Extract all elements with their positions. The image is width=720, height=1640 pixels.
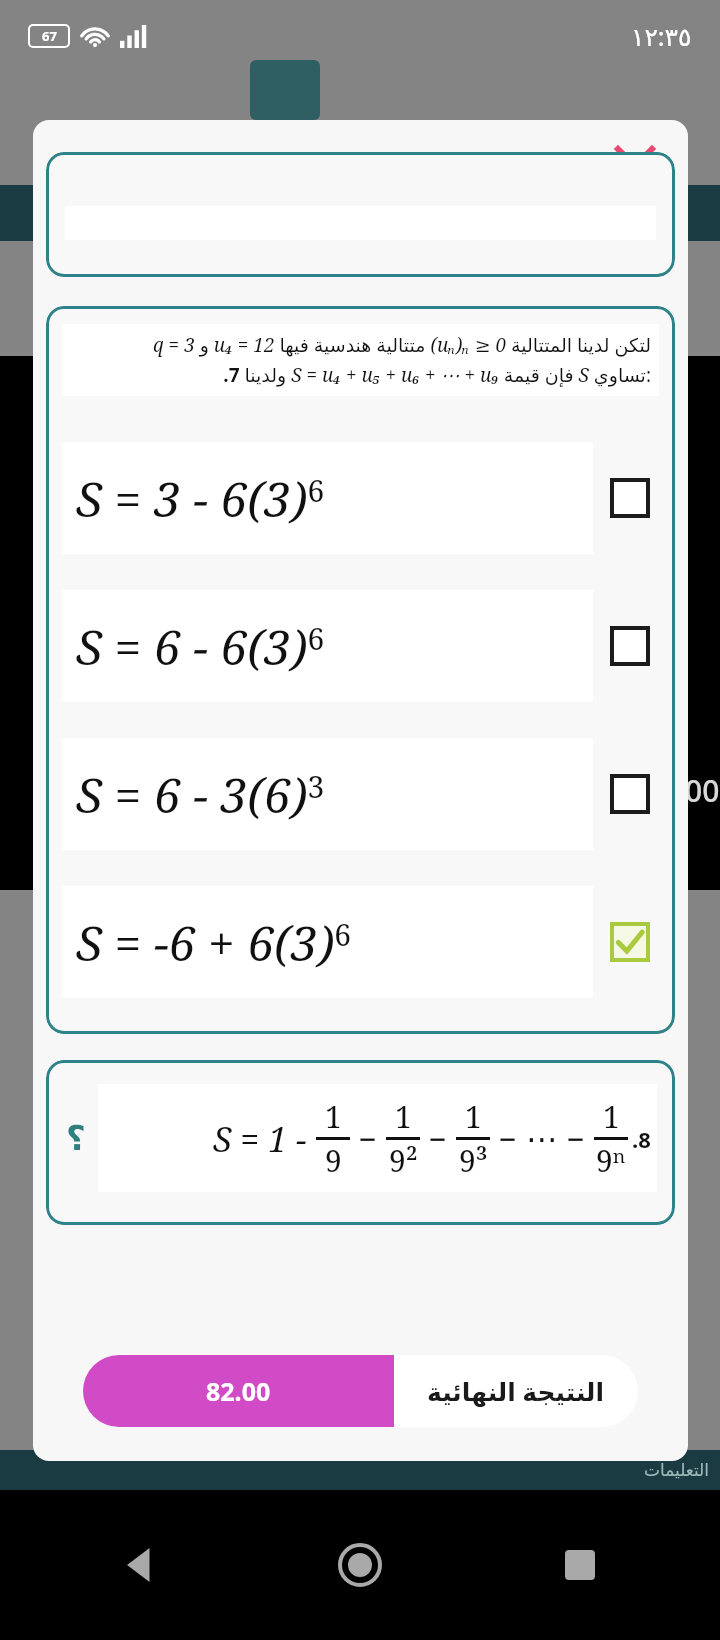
staticText: 9ⁿ [596, 1140, 626, 1181]
staticText: 00 [685, 770, 720, 811]
staticText: 9 [325, 1140, 342, 1181]
staticText: 1 [465, 1096, 482, 1137]
button[interactable]: S = 3 − 6(3)6 [62, 442, 659, 554]
staticText: 1 [395, 1096, 412, 1137]
button[interactable]: Back [110, 1535, 170, 1595]
button[interactable]: 82.00 [83, 1355, 638, 1427]
staticText: 1 [325, 1096, 342, 1137]
staticText: التعليمات [644, 1460, 710, 1480]
staticText: 82.00 [206, 1374, 271, 1408]
staticText: الاختبار [319, 149, 402, 183]
staticText: ١٢:٣٥ [631, 19, 692, 53]
staticText: S = 1 − [213, 1116, 316, 1162]
staticText: 1 [603, 1096, 620, 1137]
staticText: − [350, 1117, 386, 1161]
staticText: S = −6 + 6(3)6 [76, 910, 352, 975]
staticText: 9³ [459, 1140, 488, 1181]
button[interactable]: S = 6 − 6(3)6 [62, 590, 659, 702]
staticText: .8 [632, 1124, 651, 1154]
button[interactable]: Recents [550, 1535, 610, 1595]
staticText: − [420, 1117, 456, 1161]
staticText: 67 [42, 27, 57, 45]
button[interactable] [46, 152, 675, 277]
button[interactable]: ؟ [46, 1060, 675, 1225]
staticText: S = 6 − 3(6)3 [76, 762, 325, 827]
button[interactable]: S = −6 + 6(3)6 [62, 886, 659, 998]
button[interactable]: Home [330, 1535, 390, 1595]
button[interactable]: S = 6 − 3(6)3 [62, 738, 659, 850]
staticText: − [490, 1117, 526, 1161]
staticText: q = 3 و u₄ = 12 متتالية هندسية فيها (uₙ)… [70, 332, 651, 358]
button[interactable]: Close [607, 138, 663, 194]
staticText: ؟ [66, 1118, 86, 1158]
staticText: النتيجة النهائية [427, 1374, 605, 1408]
staticText: S = 6 − 6(3)6 [76, 614, 325, 679]
staticText: .7 ولدينا S = u₄ + u₅ + u₆ + ⋯ + u₉ فإن … [70, 362, 651, 388]
staticText: ⋯ [526, 1120, 558, 1157]
staticText: − [558, 1117, 594, 1161]
staticText: 9² [389, 1140, 418, 1181]
staticText: S = 3 − 6(3)6 [76, 466, 325, 531]
